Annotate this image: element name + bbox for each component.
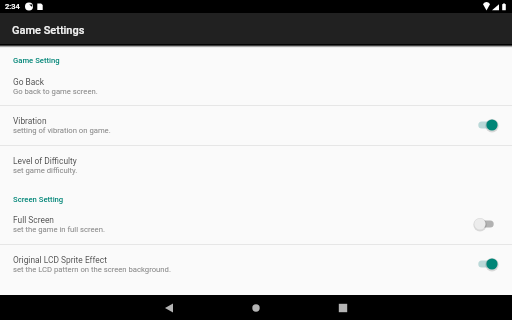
staticText: 2:34 <box>5 2 20 11</box>
button[interactable]: Switch on <box>472 114 500 136</box>
staticText: Level of Difficulty <box>13 156 77 166</box>
staticText: Go back to game screen. <box>13 87 98 96</box>
staticText: setting of vibration on game. <box>13 126 111 135</box>
button[interactable]: Original LCD Sprite Effect <box>0 245 512 284</box>
button[interactable]: Switch off <box>472 213 500 235</box>
staticText: set the LCD pattern on the screen backgr… <box>13 265 171 274</box>
staticText: Original LCD Sprite Effect <box>13 255 107 265</box>
staticText: Screen Setting <box>13 195 64 204</box>
staticText: Game Setting <box>13 56 60 65</box>
staticText: Full Screen <box>13 215 55 225</box>
staticText: Game Settings <box>12 24 85 37</box>
button[interactable]: Home <box>232 295 280 320</box>
staticText: set the game in full screen. <box>13 225 105 234</box>
staticText: set game difficulty. <box>13 166 78 175</box>
button[interactable]: Level of Difficulty <box>0 146 512 184</box>
button[interactable]: Recent apps <box>319 295 367 320</box>
button[interactable]: Back <box>145 295 193 320</box>
button[interactable]: Switch on <box>472 253 500 275</box>
staticText: Vibration <box>13 116 47 126</box>
button[interactable]: Full Screen <box>0 205 512 244</box>
button[interactable]: Go Back <box>0 67 512 105</box>
button[interactable]: Vibration <box>0 106 512 145</box>
staticText: Go Back <box>13 77 45 87</box>
